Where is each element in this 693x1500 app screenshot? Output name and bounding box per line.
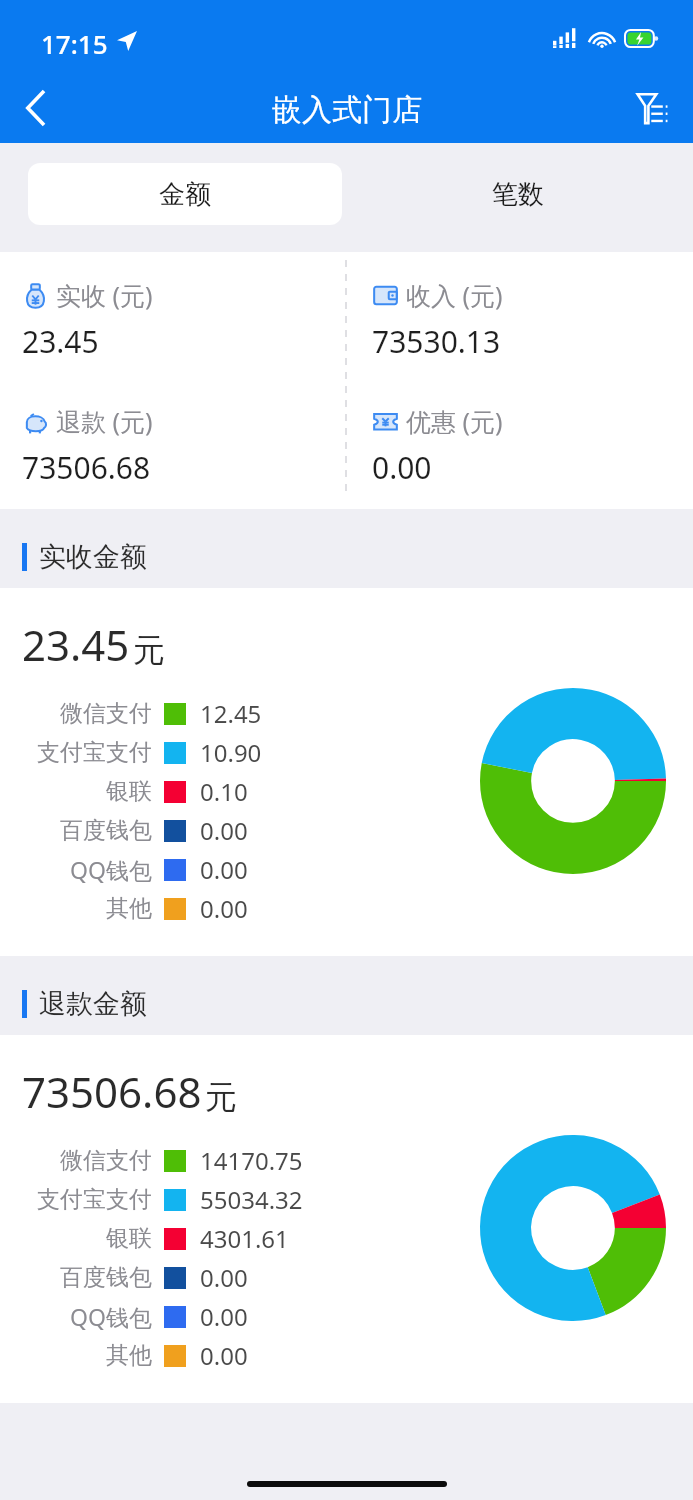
button[interactable]: 支付宝支付 [0,733,693,772]
button[interactable]: 百度钱包 [0,1258,693,1297]
staticText: 收入 (元) [406,278,503,312]
staticText: 银联 [0,777,152,806]
staticText: 优惠 (元) [406,404,503,438]
button[interactable]: Back [8,79,66,137]
staticText: 支付宝支付 [0,1185,152,1214]
button[interactable]: QQ钱包 [0,850,693,889]
staticText: 元 [133,630,165,670]
button[interactable]: 支付宝支付 [0,1180,693,1219]
staticText: 17:15 [41,26,108,61]
button[interactable]: 笔数 [342,163,693,225]
staticText: QQ钱包 [0,854,152,885]
staticText: 0.00 [200,853,248,886]
button[interactable]: QQ钱包 [0,1297,693,1336]
staticText: 0.00 [200,892,248,925]
staticText: 23.45 [22,321,99,362]
button[interactable]: Filter [623,79,681,137]
staticText: 14170.75 [200,1144,303,1177]
staticText: 实收 (元) [56,278,153,312]
staticText: 微信支付 [0,1146,152,1175]
button[interactable]: 其他 [0,1336,693,1375]
staticText: 退款金额 [39,987,147,1021]
staticText: 银联 [0,1224,152,1253]
staticText: 支付宝支付 [0,738,152,767]
staticText: 退款 (元) [56,404,153,438]
staticText: 嵌入式门店 [272,91,422,129]
button[interactable]: 金额 [28,163,342,225]
staticText: 55034.32 [200,1183,303,1216]
button[interactable]: 百度钱包 [0,811,693,850]
staticText: 其他 [0,894,152,923]
staticText: 0.00 [372,447,432,488]
staticText: 73530.13 [372,321,501,362]
staticText: 23.45 [22,616,130,673]
staticText: 元 [205,1077,237,1117]
button[interactable]: 实收 (元) [22,278,346,362]
staticText: 其他 [0,1341,152,1370]
staticText: 微信支付 [0,699,152,728]
button[interactable]: 其他 [0,889,693,928]
button[interactable]: 收入 (元) [372,278,693,362]
staticText: 4301.61 [200,1222,289,1255]
staticText: 73506.68 [22,1063,202,1120]
button[interactable]: 银联 [0,1219,693,1258]
button[interactable]: 微信支付 [0,694,693,733]
staticText: 0.10 [200,775,248,808]
staticText: 73506.68 [22,447,151,488]
button[interactable]: 退款 (元) [22,404,346,488]
staticText: 10.90 [200,736,262,769]
staticText: 笔数 [492,178,544,211]
staticText: 12.45 [200,697,262,730]
staticText: QQ钱包 [0,1301,152,1332]
button[interactable]: 银联 [0,772,693,811]
staticText: 实收金额 [39,540,147,574]
button[interactable]: 优惠 (元) [372,404,693,488]
staticText: 金额 [159,178,211,211]
button[interactable]: 微信支付 [0,1141,693,1180]
staticText: 0.00 [200,814,248,847]
staticText: 百度钱包 [0,1263,152,1292]
staticText: 0.00 [200,1300,248,1333]
staticText: 0.00 [200,1261,248,1294]
staticText: 百度钱包 [0,816,152,845]
staticText: 0.00 [200,1339,248,1372]
